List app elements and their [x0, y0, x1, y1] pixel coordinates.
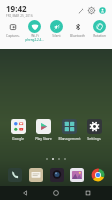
button[interactable]: Settings: [82, 118, 106, 141]
staticText: Rotation: [93, 34, 106, 38]
button[interactable]: User profile: [97, 5, 108, 16]
staticText: Capture+: [6, 34, 20, 38]
staticText: Silent: [52, 34, 61, 38]
staticText: Settings: [87, 136, 101, 141]
button[interactable]: Gallery: [68, 166, 85, 183]
button[interactable]: Wi-Fi: [24, 20, 45, 42]
staticText: Bluetooth: [70, 34, 85, 38]
staticText: Google: [12, 136, 24, 141]
button[interactable]: Silent: [46, 20, 67, 38]
staticText: 19:42: [6, 3, 27, 14]
button[interactable]: Settings: [86, 5, 97, 16]
staticText: FRI, MAR 25, 2016: [6, 14, 33, 18]
staticText: Management: [58, 136, 81, 141]
button[interactable]: Messages: [27, 166, 44, 183]
button[interactable]: Camera: [48, 166, 65, 183]
button[interactable]: Edit: [75, 5, 86, 16]
button[interactable]: Home: [49, 186, 63, 200]
button[interactable]: Management: [57, 118, 81, 141]
button[interactable]: Google: [6, 118, 30, 141]
staticText: Play Store: [35, 136, 52, 141]
button[interactable]: Bluetooth: [67, 20, 88, 38]
button[interactable]: Rotation: [89, 20, 110, 38]
button[interactable]: Phone: [6, 166, 23, 183]
button[interactable]: Capture+: [2, 20, 23, 38]
button[interactable]: Back: [18, 186, 32, 200]
button[interactable]: Recents: [81, 186, 95, 200]
button[interactable]: Play Store: [31, 118, 55, 141]
staticText: Wi-Fi: [31, 34, 39, 38]
button[interactable]: Chrome: [89, 166, 106, 183]
staticText: pheng2-2.4...: [25, 38, 44, 42]
